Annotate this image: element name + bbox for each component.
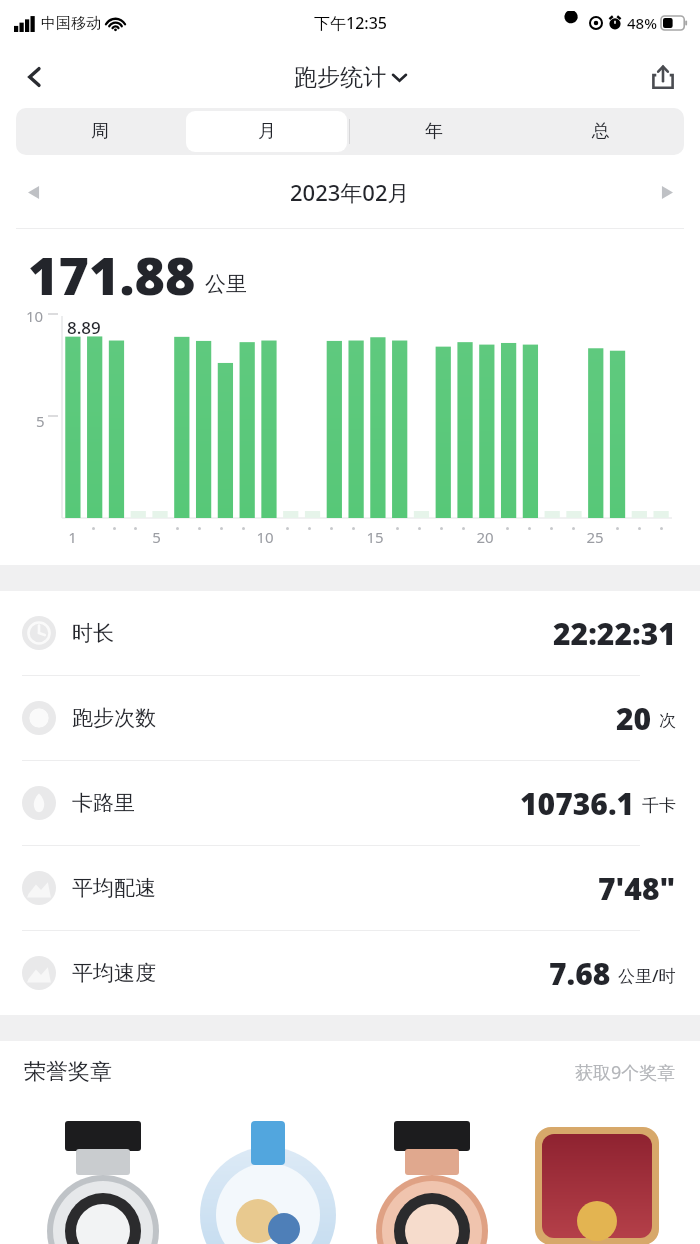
- staticText: 15: [366, 527, 384, 547]
- button[interactable]: [28, 1103, 178, 1223]
- staticText: 2023年02月: [290, 177, 410, 207]
- button[interactable]: 年: [353, 111, 514, 152]
- staticText: 总: [592, 120, 610, 143]
- staticText: 平均配速: [72, 875, 156, 901]
- staticText: 时长: [72, 620, 114, 646]
- staticText: 年: [425, 120, 443, 143]
- staticText: 千卡: [642, 795, 676, 816]
- button[interactable]: 总: [520, 111, 681, 152]
- staticText: 获取9个奖章: [575, 1060, 676, 1085]
- staticText: 下午12:35: [314, 12, 387, 34]
- staticText: 公里: [205, 271, 247, 297]
- button[interactable]: Share: [636, 50, 690, 104]
- button[interactable]: 跑步统计: [294, 63, 406, 92]
- staticText: 10736.1: [520, 783, 635, 824]
- staticText: 5: [152, 527, 161, 547]
- staticText: 8.89: [67, 316, 101, 339]
- staticText: 22:22:31: [553, 613, 676, 654]
- button[interactable]: 周: [19, 111, 180, 152]
- button[interactable]: 月: [186, 111, 347, 152]
- staticText: 卡路里: [72, 790, 135, 816]
- staticText: 20: [616, 698, 652, 739]
- button[interactable]: Previous month: [14, 172, 54, 212]
- button[interactable]: 平均速度: [0, 931, 700, 1015]
- staticText: 10: [26, 306, 44, 326]
- staticText: 荣誉奖章: [24, 1058, 112, 1086]
- button[interactable]: 平均配速: [0, 846, 700, 930]
- staticText: 7'48": [598, 868, 676, 909]
- staticText: 48%: [627, 13, 657, 33]
- staticText: 1: [68, 527, 77, 547]
- staticText: 公里/时: [618, 964, 676, 987]
- button[interactable]: Back: [8, 50, 62, 104]
- button[interactable]: 荣誉奖章: [0, 1041, 700, 1103]
- staticText: 171.88: [28, 239, 196, 303]
- staticText: 7.68: [549, 953, 611, 994]
- staticText: 5: [36, 411, 45, 431]
- button[interactable]: 跑步次数: [0, 676, 700, 760]
- button[interactable]: 时长: [0, 591, 700, 675]
- staticText: 月: [258, 120, 276, 143]
- button[interactable]: Next month: [646, 172, 686, 212]
- button[interactable]: [522, 1103, 672, 1223]
- staticText: 周: [91, 120, 109, 143]
- staticText: 10: [256, 527, 274, 547]
- button[interactable]: [357, 1103, 507, 1223]
- staticText: 跑步次数: [72, 705, 156, 731]
- staticText: 平均速度: [72, 960, 156, 986]
- button[interactable]: 卡路里: [0, 761, 700, 845]
- staticText: 次: [659, 710, 676, 731]
- button[interactable]: [193, 1103, 343, 1223]
- staticText: 25: [586, 527, 604, 547]
- staticText: 跑步统计: [294, 63, 386, 92]
- staticText: 20: [476, 527, 494, 547]
- staticText: 中国移动: [41, 14, 101, 33]
